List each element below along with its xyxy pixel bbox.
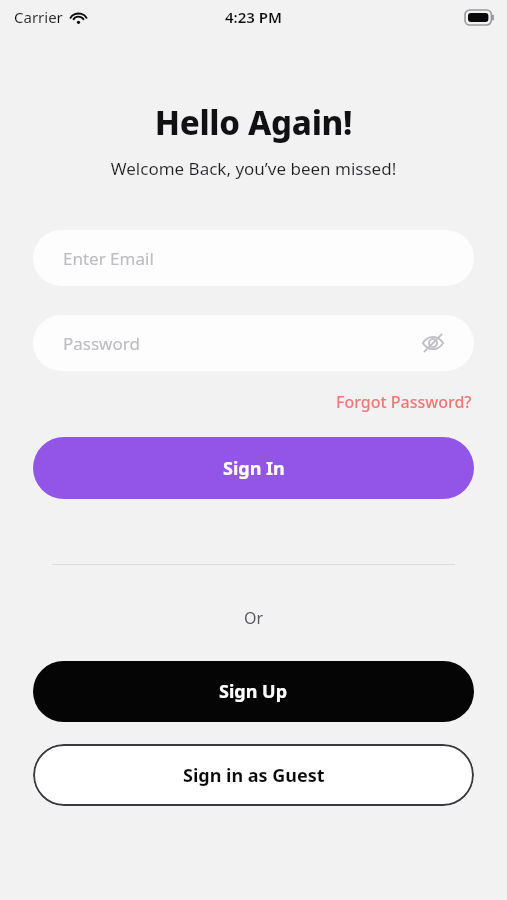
button[interactable]: Show password — [416, 326, 450, 360]
staticText: Enter Email — [63, 247, 154, 270]
button[interactable]: Forgot Password? — [334, 389, 474, 415]
button[interactable]: Sign Up — [33, 661, 474, 722]
staticText: Hello Again! — [0, 100, 507, 145]
staticText: Forgot Password? — [336, 391, 472, 413]
staticText: Sign In — [223, 456, 285, 481]
button[interactable]: Enter Email — [33, 230, 474, 286]
staticText: Carrier — [14, 7, 63, 27]
staticText: Sign in as Guest — [183, 763, 325, 788]
staticText: Sign Up — [219, 679, 288, 704]
button[interactable]: Sign in as Guest — [33, 744, 474, 806]
staticText: Welcome Back, you’ve been missed! — [0, 157, 507, 180]
button[interactable]: Sign In — [33, 437, 474, 499]
staticText: Or — [0, 607, 507, 629]
staticText: Password — [63, 332, 140, 355]
button[interactable]: Password — [33, 315, 474, 371]
staticText: 4:23 PM — [225, 7, 282, 27]
